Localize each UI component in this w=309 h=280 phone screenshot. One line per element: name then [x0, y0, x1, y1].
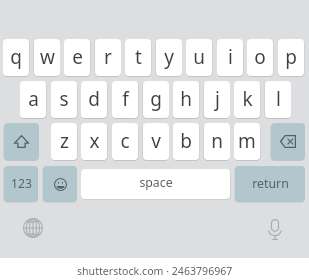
- staticText: g: [150, 86, 162, 112]
- button[interactable]: u: [186, 39, 212, 76]
- button[interactable]: Emoji: [43, 166, 77, 202]
- button[interactable]: l: [265, 81, 291, 118]
- staticText: b: [180, 128, 192, 154]
- button[interactable]: m: [234, 123, 260, 160]
- staticText: j: [215, 86, 220, 112]
- button[interactable]: p: [278, 39, 304, 76]
- staticText: e: [72, 44, 83, 70]
- staticText: k: [242, 86, 253, 112]
- staticText: z: [60, 128, 69, 154]
- staticText: l: [276, 86, 281, 112]
- staticText: p: [285, 44, 297, 70]
- button[interactable]: z: [51, 123, 77, 160]
- button[interactable]: y: [156, 39, 182, 76]
- button[interactable]: h: [173, 81, 199, 118]
- staticText: v: [151, 128, 161, 154]
- staticText: a: [28, 86, 39, 112]
- button[interactable]: g: [143, 81, 169, 118]
- staticText: i: [228, 44, 233, 70]
- staticText: w: [40, 44, 55, 70]
- button[interactable]: a: [20, 81, 46, 118]
- button[interactable]: space: [81, 169, 230, 199]
- button[interactable]: f: [112, 81, 138, 118]
- button[interactable]: Change keyboard language: [21, 216, 45, 240]
- button[interactable]: w: [34, 39, 60, 76]
- button[interactable]: i: [217, 39, 243, 76]
- staticText: m: [238, 128, 256, 154]
- staticText: n: [211, 128, 223, 154]
- staticText: u: [193, 44, 205, 70]
- staticText: s: [59, 86, 69, 112]
- staticText: space: [139, 174, 173, 191]
- staticText: c: [120, 128, 130, 154]
- button[interactable]: 123: [4, 166, 38, 202]
- staticText: x: [89, 128, 100, 154]
- button[interactable]: o: [247, 39, 273, 76]
- button[interactable]: x: [81, 123, 107, 160]
- staticText: f: [122, 86, 129, 112]
- button[interactable]: d: [81, 81, 107, 118]
- button[interactable]: s: [51, 81, 77, 118]
- button[interactable]: v: [143, 123, 169, 160]
- button[interactable]: Backspace: [271, 123, 305, 160]
- button[interactable]: b: [173, 123, 199, 160]
- staticText: h: [180, 86, 192, 112]
- button[interactable]: r: [95, 39, 121, 76]
- button[interactable]: Voice input: [263, 214, 287, 244]
- button[interactable]: return: [235, 166, 305, 202]
- staticText: q: [10, 44, 22, 70]
- staticText: 123: [11, 175, 32, 192]
- staticText: o: [254, 44, 266, 70]
- staticText: return: [252, 175, 289, 192]
- button[interactable]: t: [125, 39, 151, 76]
- staticText: shutterstock.com · 2463796967: [77, 264, 233, 278]
- button[interactable]: q: [3, 39, 29, 76]
- button[interactable]: k: [234, 81, 260, 118]
- button[interactable]: n: [204, 123, 230, 160]
- staticText: d: [88, 86, 100, 112]
- staticText: r: [104, 44, 112, 70]
- staticText: t: [135, 44, 142, 70]
- button[interactable]: Shift: [4, 123, 39, 160]
- button[interactable]: c: [112, 123, 138, 160]
- button[interactable]: j: [204, 81, 230, 118]
- staticText: y: [164, 44, 174, 70]
- button[interactable]: e: [64, 39, 90, 76]
